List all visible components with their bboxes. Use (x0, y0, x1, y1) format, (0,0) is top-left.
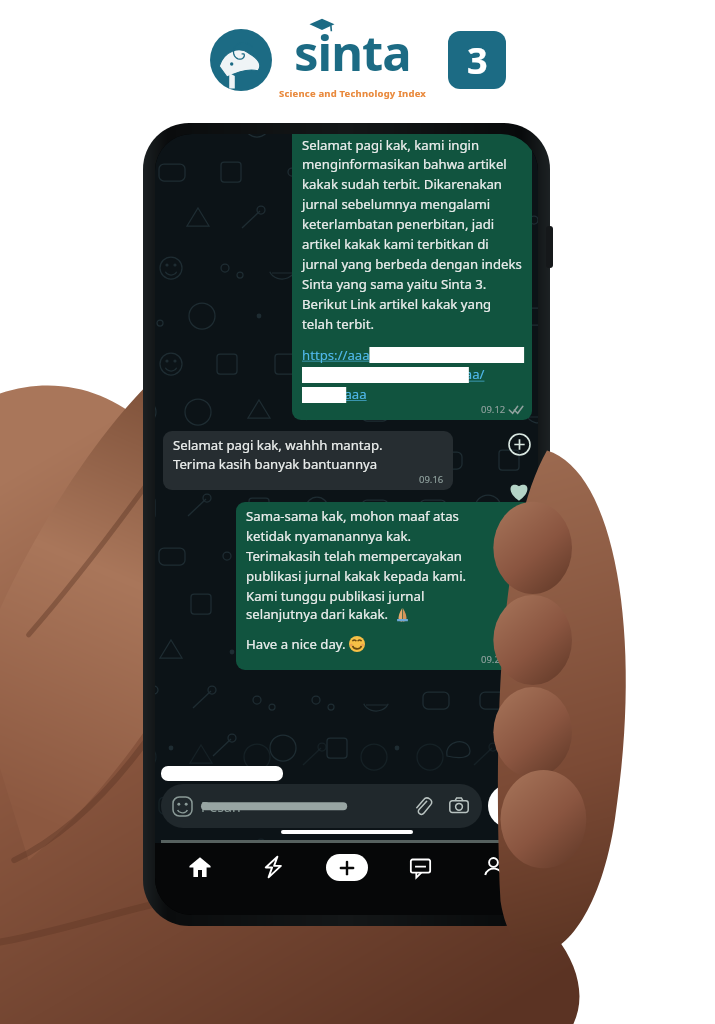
button[interactable]: Voice message (488, 784, 532, 828)
button[interactable]: Home (169, 843, 231, 891)
button[interactable]: Attach (410, 794, 434, 818)
button[interactable]: Create (316, 843, 378, 891)
staticText: selanjutnya dari kakak. (246, 605, 395, 623)
button[interactable]: Follow (506, 431, 532, 457)
staticText: Pesan (201, 797, 241, 816)
button[interactable]: Messages (389, 843, 451, 891)
staticText: Selamat pagi kak, wahhh mantap. Terima k… (173, 436, 383, 473)
button[interactable]: 3 (448, 31, 506, 89)
staticText: sinta (294, 19, 411, 86)
button[interactable]: Reels (242, 843, 304, 891)
button[interactable]: Like (506, 478, 532, 504)
staticText: 09.16 (419, 473, 444, 486)
button[interactable]: Pesan (161, 784, 482, 828)
staticText: 09.12 (481, 403, 506, 416)
button[interactable]: Save (506, 572, 532, 598)
staticText: Selamat pagi kak, kami ingin menginforma… (302, 136, 523, 333)
staticText: 09.21 (481, 653, 506, 666)
button[interactable]: Sama-sama kak, mohon maaf atas ketidak n… (236, 502, 532, 670)
staticText: Science and Technology Index (279, 87, 426, 100)
button[interactable]: Selamat pagi kak, wahhh mantap. Terima k… (163, 431, 453, 490)
staticText: Sama-sama kak, mohon maaf atas ketidak n… (246, 507, 467, 605)
button[interactable]: Comment (506, 525, 532, 551)
button[interactable]: Selamat pagi kak, kami ingin menginforma… (292, 134, 532, 420)
staticText: Have a nice day. (246, 635, 349, 653)
button[interactable]: Profile (462, 843, 524, 891)
staticText: 3 (467, 36, 488, 85)
button[interactable]: Camera (447, 794, 471, 818)
staticText: https://aaaaaaaaaaaaaaaaaaaaaaaaaaaaaaaa… (302, 346, 523, 403)
